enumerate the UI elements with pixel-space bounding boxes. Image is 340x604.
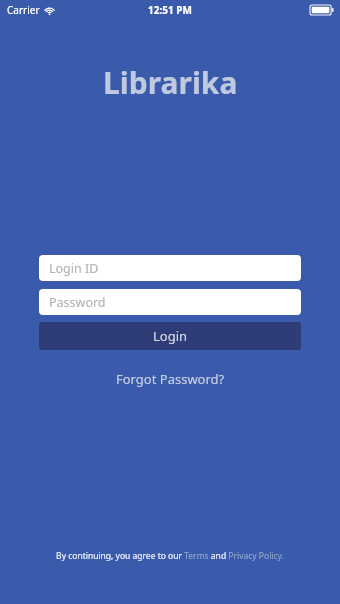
button[interactable]: Forgot Password?	[110, 368, 231, 390]
staticText: Password	[49, 294, 106, 311]
staticText: 12:51 PM	[148, 3, 192, 17]
button[interactable]: Password	[39, 289, 301, 315]
other: Battery full	[310, 5, 334, 15]
button[interactable]: By continuing, you agree to our Terms an…	[48, 548, 292, 564]
button[interactable]: Login ID	[39, 255, 301, 281]
staticText: By continuing, you agree to our Terms an…	[56, 550, 284, 562]
staticText: Carrier	[7, 3, 40, 17]
staticText: Login ID	[49, 260, 99, 277]
button[interactable]: Login	[39, 322, 301, 350]
staticText: Login	[153, 327, 188, 345]
staticText: Forgot Password?	[116, 370, 225, 388]
other: Wi-Fi signal	[44, 6, 55, 15]
staticText: Librarika	[103, 62, 238, 103]
